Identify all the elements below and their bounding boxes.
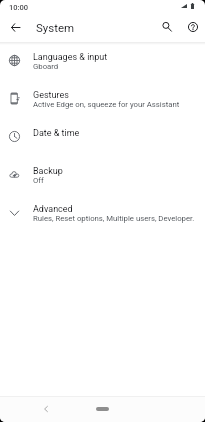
- button[interactable]: Gestures: [0, 79, 205, 117]
- button[interactable]: Backup: [0, 155, 205, 193]
- button[interactable]: Home: [96, 407, 109, 411]
- staticText: Gboard: [33, 62, 198, 71]
- staticText: Rules, Reset options, Multiple users, De…: [33, 214, 198, 223]
- button[interactable]: Date & time: [0, 117, 205, 155]
- staticText: Date & time: [33, 128, 80, 139]
- staticText: Languages & input: [33, 52, 108, 63]
- staticText: Gestures: [33, 90, 69, 101]
- button[interactable]: Back: [4, 16, 26, 38]
- button[interactable]: Back: [44, 406, 48, 412]
- staticText: Active Edge on, squeeze for your Assista…: [33, 100, 198, 109]
- staticText: Backup: [33, 166, 63, 177]
- button[interactable]: Help: [182, 16, 204, 38]
- staticText: Advanced: [33, 204, 73, 215]
- staticText: Off: [33, 176, 198, 185]
- button[interactable]: Advanced: [0, 193, 205, 231]
- button[interactable]: Languages & input: [0, 41, 205, 79]
- staticText: 10:00: [9, 3, 29, 12]
- staticText: System: [36, 21, 75, 34]
- button[interactable]: Search: [156, 16, 178, 38]
